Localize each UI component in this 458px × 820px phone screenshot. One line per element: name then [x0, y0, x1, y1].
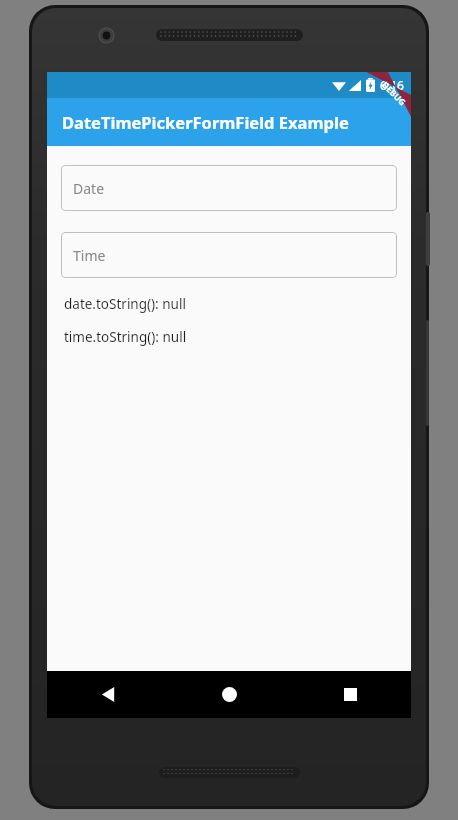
staticText: DEBUG [379, 79, 409, 109]
staticText: time.toString(): null [64, 328, 187, 346]
staticText: Time [73, 246, 106, 265]
staticText: 6:16 [380, 77, 404, 93]
staticText: date.toString(): null [64, 295, 186, 313]
button[interactable]: Recent apps [290, 671, 411, 718]
button[interactable]: Home [169, 671, 290, 718]
staticText: DateTimePickerFormField Example [62, 111, 349, 133]
button[interactable]: Time [61, 232, 397, 278]
button[interactable]: Back [47, 671, 169, 718]
staticText: Date [73, 179, 105, 198]
button[interactable]: Date [61, 165, 397, 211]
